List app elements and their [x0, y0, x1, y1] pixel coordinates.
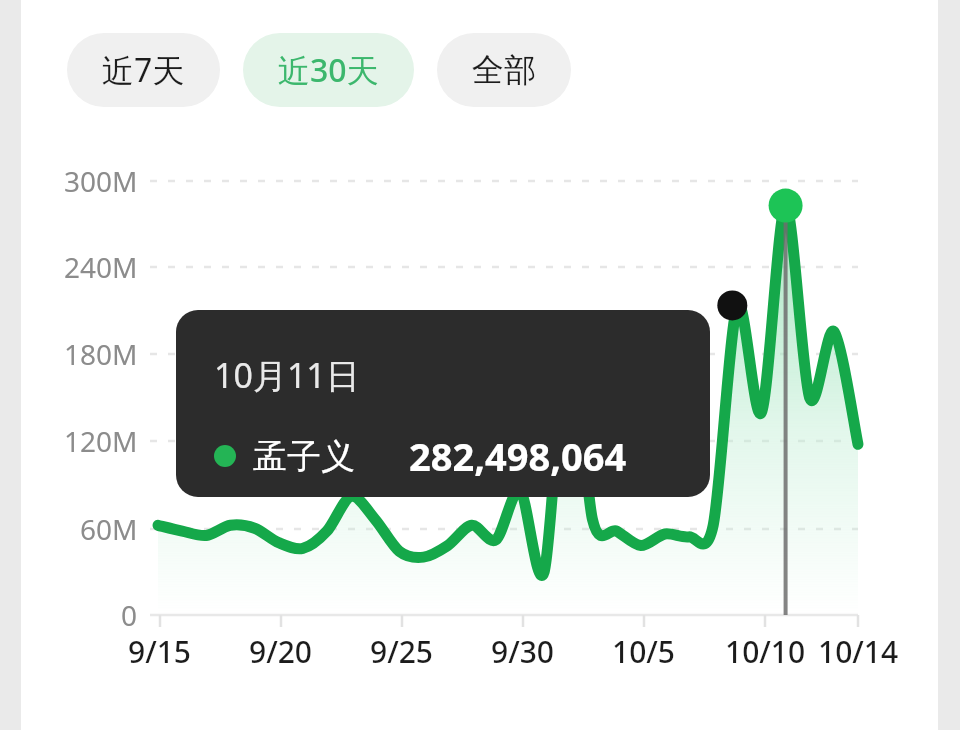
- staticText: 10/10: [725, 631, 806, 672]
- staticText: 60M: [80, 510, 138, 548]
- button[interactable]: 近7天: [67, 33, 220, 107]
- staticText: 9/30: [491, 631, 555, 672]
- staticText: 240M: [64, 248, 138, 286]
- staticText: 近30天: [278, 48, 379, 92]
- button[interactable]: 10月11日: [176, 310, 710, 497]
- staticText: 9/25: [370, 631, 434, 672]
- staticText: 10/5: [612, 631, 676, 672]
- button[interactable]: 近30天: [243, 33, 414, 107]
- staticText: 282,498,064: [409, 430, 627, 482]
- staticText: 9/15: [128, 631, 192, 672]
- staticText: 近7天: [102, 48, 185, 92]
- staticText: 孟子义: [253, 435, 355, 478]
- staticText: 0: [121, 596, 138, 634]
- staticText: 10/14: [818, 631, 899, 672]
- staticText: 9/20: [249, 631, 313, 672]
- staticText: 全部: [472, 50, 536, 90]
- staticText: 300M: [64, 162, 138, 200]
- staticText: 120M: [64, 422, 138, 460]
- staticText: 180M: [64, 335, 138, 373]
- staticText: 10月11日: [214, 352, 360, 398]
- button[interactable]: 全部: [437, 33, 571, 107]
